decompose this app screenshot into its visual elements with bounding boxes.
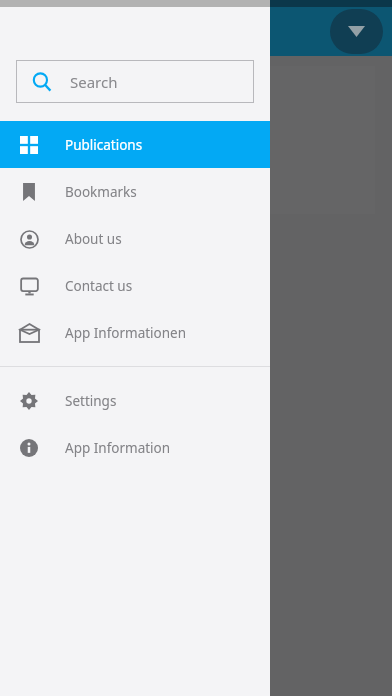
button[interactable]: App Informationen	[0, 309, 270, 356]
button[interactable]	[32, 155, 144, 196]
staticText: Journal Issue 134	[32, 93, 170, 116]
staticText: Settings	[65, 392, 117, 410]
button[interactable]: About us	[0, 215, 270, 262]
button[interactable]: Bookmarks	[0, 168, 270, 215]
staticText: Publications	[65, 136, 143, 154]
staticText: App Informationen	[65, 324, 187, 342]
staticText: Search	[70, 72, 118, 92]
button[interactable]: Publications	[0, 121, 270, 168]
button[interactable]: App Information	[0, 424, 270, 471]
staticText: App Information	[65, 439, 171, 457]
button[interactable]: Search	[16, 60, 254, 103]
staticText: About us	[65, 230, 122, 248]
staticText: Contact us	[65, 277, 133, 295]
button[interactable]: Close	[152, 155, 193, 196]
staticText: Bookmarks	[65, 183, 137, 201]
button[interactable]: Expand menu	[330, 9, 383, 54]
button[interactable]: Contact us	[0, 262, 270, 309]
button[interactable]: Settings	[0, 377, 270, 424]
